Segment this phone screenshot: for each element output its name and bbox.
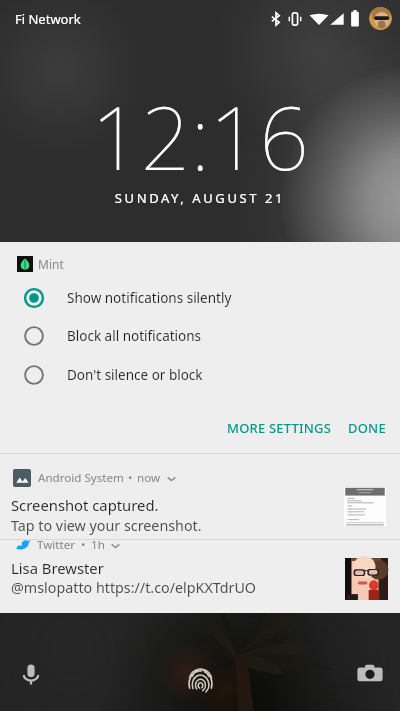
button[interactable]: Fingerprint unlock [188,667,213,695]
button[interactable]: DONE [340,411,394,445]
staticText: • [81,537,86,553]
staticText: Don't silence or block [67,366,203,384]
button[interactable]: Show notifications silently [0,279,400,317]
staticText: Mint [38,256,64,272]
staticText: Android System [38,470,124,486]
staticText: Show notifications silently [67,289,232,307]
staticText: DONE [348,419,386,437]
staticText: now [137,470,161,486]
button[interactable]: Don't silence or block [0,356,400,394]
button[interactable]: Android System [0,454,400,539]
staticText: Tap to view your screenshot. [11,516,202,535]
staticText: SUNDAY, AUGUST 21 [0,189,400,207]
staticText: Screenshot captured. [11,495,159,515]
button[interactable]: Voice assist [16,659,46,689]
staticText: 1h [91,537,105,553]
staticText: • [128,470,133,486]
button[interactable]: Camera [355,659,385,689]
staticText: MORE SETTINGS [227,419,332,437]
button[interactable]: Twitter [0,540,400,613]
staticText: 12:16 [0,77,400,195]
staticText: @mslopatto https://t.co/elpKXTdrUO [11,578,257,597]
button[interactable]: User profile [369,7,392,30]
button[interactable]: MORE SETTINGS [219,411,340,445]
staticText: Lisa Brewster [11,558,104,578]
button[interactable]: Block all notifications [0,317,400,355]
staticText: Twitter [37,537,76,553]
staticText: Block all notifications [67,327,202,345]
staticText: Fi Network [15,10,81,28]
